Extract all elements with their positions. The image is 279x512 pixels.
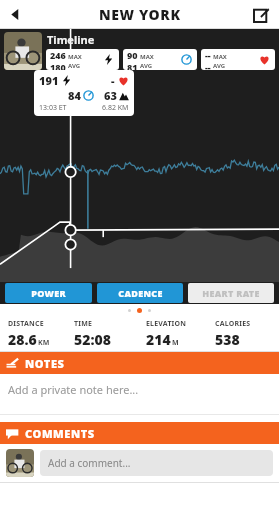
staticText: DISTANCE (8, 319, 44, 329)
staticText: HEART RATE (202, 287, 260, 299)
staticText: 214 (146, 330, 171, 349)
staticText: POWER (31, 287, 66, 299)
staticText: NOTES (25, 356, 65, 371)
staticText: -- (205, 61, 211, 70)
button[interactable]: HEART RATE (188, 283, 274, 303)
staticText: CALORIES (215, 319, 251, 329)
staticText: Timeline (47, 32, 95, 47)
staticText: 28.6 (8, 330, 37, 349)
button[interactable]: 246 (50, 49, 115, 70)
staticText: 52:08 (74, 330, 111, 349)
staticText: 81 (127, 61, 138, 70)
button[interactable]: POWER (5, 283, 92, 303)
staticText: COMMENTS (25, 426, 95, 441)
staticText: 13:03 ET (39, 103, 102, 113)
staticText: KM (38, 338, 50, 348)
staticText: MAX (68, 53, 82, 61)
staticText: TIME (74, 319, 93, 329)
staticText: 84 (68, 88, 81, 103)
staticText: Add a comment... (48, 456, 131, 470)
staticText: AVG (213, 62, 226, 70)
button[interactable]: -- (205, 49, 271, 70)
staticText: ELEVATION (146, 319, 187, 329)
staticText: CADENCE (118, 287, 163, 299)
button[interactable]: Add a private note here... (0, 374, 279, 414)
staticText: 6.82 KM (102, 103, 129, 113)
staticText: 90 (127, 49, 138, 61)
staticText: 246 (50, 49, 66, 61)
staticText: 191 (39, 73, 59, 88)
staticText: Add a private note here... (8, 382, 139, 397)
staticText: AVG (68, 62, 81, 70)
staticText: AVG (140, 62, 153, 70)
button[interactable]: Add a comment... (40, 450, 273, 476)
staticText: M (172, 338, 179, 348)
staticText: MAX (213, 53, 227, 61)
staticText: MAX (140, 53, 154, 61)
staticText: NEW YORK (99, 5, 181, 24)
button[interactable]: CADENCE (97, 283, 183, 303)
button[interactable]: 90 (127, 49, 193, 70)
button[interactable]: Edit (249, 2, 273, 26)
staticText: -- (205, 49, 211, 61)
staticText: 538 (215, 330, 240, 349)
button[interactable]: Back (0, 0, 30, 28)
staticText: 63 (104, 88, 117, 103)
staticText: 180 (50, 61, 66, 70)
staticText: - (111, 73, 115, 88)
